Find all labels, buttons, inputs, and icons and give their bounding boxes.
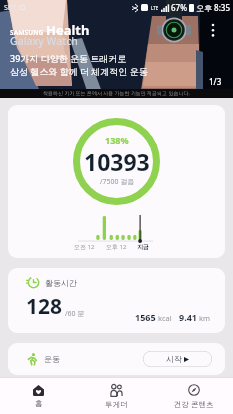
staticText: 138%: [105, 134, 129, 146]
staticText: 1/3: [209, 76, 222, 87]
button[interactable]: 건강 콘텐츠: [155, 378, 233, 414]
button[interactable]: 시작: [143, 351, 212, 367]
staticText: LTE: [151, 5, 159, 11]
staticText: 128: [26, 292, 63, 321]
staticText: km: [199, 313, 211, 323]
staticText: Galaxy Watch: [10, 34, 78, 48]
staticText: /7500 걸음: [100, 177, 135, 187]
staticText: 오후 8:35: [196, 2, 230, 13]
staticText: 39가지 다양한 운동 트래커로: [10, 52, 127, 64]
staticText: 운동: [44, 354, 60, 364]
staticText: /60 분: [65, 309, 85, 319]
staticText: 오전 12: [74, 243, 95, 251]
button[interactable]: SKT: [0, 0, 233, 98]
button[interactable]: More options: [206, 22, 220, 36]
staticText: 투게더: [105, 400, 128, 409]
staticText: 지금: [137, 243, 149, 251]
staticText: SKT: [4, 3, 17, 13]
staticText: 9.41: [179, 311, 197, 323]
staticText: 1565: [135, 311, 156, 323]
button[interactable]: 홈: [0, 378, 77, 414]
staticText: 10393: [84, 146, 150, 177]
staticText: 시작: [166, 354, 182, 364]
staticText: 오후 12: [106, 243, 127, 251]
staticText: 삼성 헬스와 함께 더 체계적인 운동: [10, 65, 148, 77]
staticText: 착용하신 기기 또는 폰에서 사용 가능한 기능만 제공되고 있습니다.: [43, 90, 190, 97]
staticText: kcal: [158, 313, 172, 323]
staticText: 건강 콘텐츠: [174, 399, 214, 409]
staticText: 67%: [171, 2, 187, 13]
button[interactable]: 투게더: [77, 378, 155, 414]
button[interactable]: 활동시간: [8, 268, 225, 333]
staticText: SAMSUNG: [10, 28, 44, 37]
staticText: 홈: [35, 399, 43, 408]
button[interactable]: 138%: [8, 105, 225, 258]
staticText: 활동시간: [45, 278, 77, 288]
staticText: Health: [46, 21, 90, 39]
